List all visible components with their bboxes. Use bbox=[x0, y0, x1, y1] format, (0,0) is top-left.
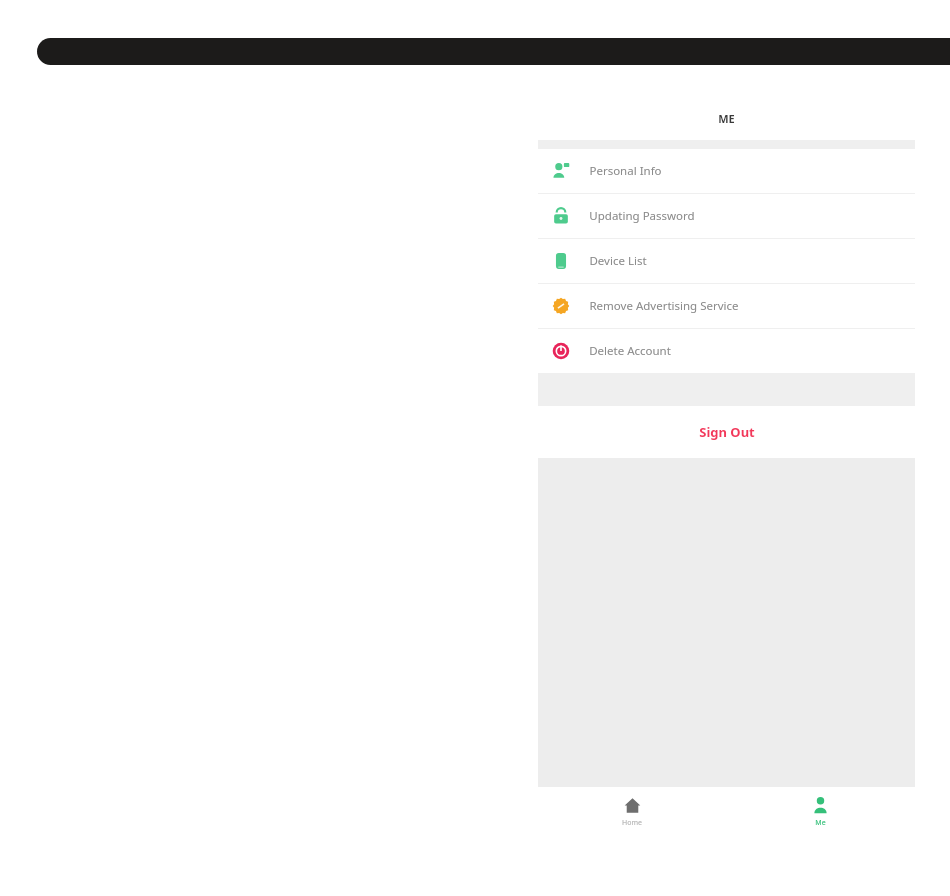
staticText: Updating Password bbox=[589, 208, 695, 224]
staticText: Personal Info bbox=[589, 163, 662, 179]
button[interactable]: Home bbox=[538, 787, 726, 848]
staticText: Delete Account bbox=[589, 343, 671, 359]
button[interactable]: Updating Password bbox=[538, 194, 915, 238]
button[interactable]: Delete Account bbox=[538, 329, 915, 373]
button[interactable]: Me bbox=[726, 787, 915, 848]
button[interactable]: Device List bbox=[538, 239, 915, 283]
staticText: Device List bbox=[589, 253, 647, 269]
staticText: Home bbox=[622, 818, 642, 828]
button[interactable]: Remove Advertising Service bbox=[538, 284, 915, 328]
staticText: Sign Out bbox=[699, 423, 755, 441]
button[interactable]: Sign Out bbox=[538, 406, 915, 458]
staticText: Me bbox=[815, 818, 826, 828]
staticText: Remove Advertising Service bbox=[589, 298, 739, 314]
staticText: ME bbox=[718, 111, 735, 126]
button[interactable]: Personal Info bbox=[538, 149, 915, 193]
